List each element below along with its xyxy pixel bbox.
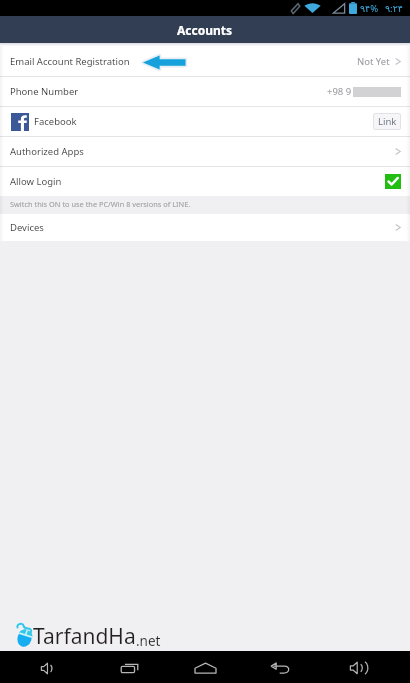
staticText: Facebook <box>34 115 77 128</box>
button[interactable]: Volume up <box>320 651 398 683</box>
staticText: Email Account Registration <box>10 55 130 68</box>
button[interactable]: Volume down <box>10 651 88 683</box>
button[interactable]: Allow Login enabled <box>385 174 401 189</box>
button[interactable]: Allow Login <box>0 167 410 196</box>
staticText: .net <box>136 632 161 650</box>
staticText: Not Yet <box>357 55 390 68</box>
other: Auto rotate <box>291 3 300 14</box>
staticText: Phone Number <box>10 85 79 98</box>
button[interactable]: Recent apps <box>90 651 168 683</box>
button[interactable]: Home <box>166 651 244 683</box>
staticText: Authorized Apps <box>10 145 84 158</box>
button[interactable]: Facebook <box>0 107 410 136</box>
staticText: Allow Login <box>10 175 62 188</box>
button[interactable]: Authorized Apps <box>0 137 410 166</box>
staticText: ۹:۲۴ <box>385 2 403 15</box>
staticText: TarfandHa <box>33 622 136 651</box>
staticText: Accounts <box>177 22 233 38</box>
staticText: Devices <box>10 221 44 234</box>
button[interactable]: Devices <box>0 214 410 241</box>
staticText: Switch this ON to use the PC/Win 8 versi… <box>10 199 191 209</box>
button[interactable]: Email Account Registration <box>0 46 410 76</box>
staticText: Link <box>378 115 397 128</box>
staticText: ۹۴% <box>360 2 379 15</box>
button[interactable]: Phone Number <box>0 77 410 106</box>
staticText: +98 9 <box>327 85 352 98</box>
button[interactable]: Link <box>373 113 401 130</box>
button[interactable]: Back <box>242 651 320 683</box>
